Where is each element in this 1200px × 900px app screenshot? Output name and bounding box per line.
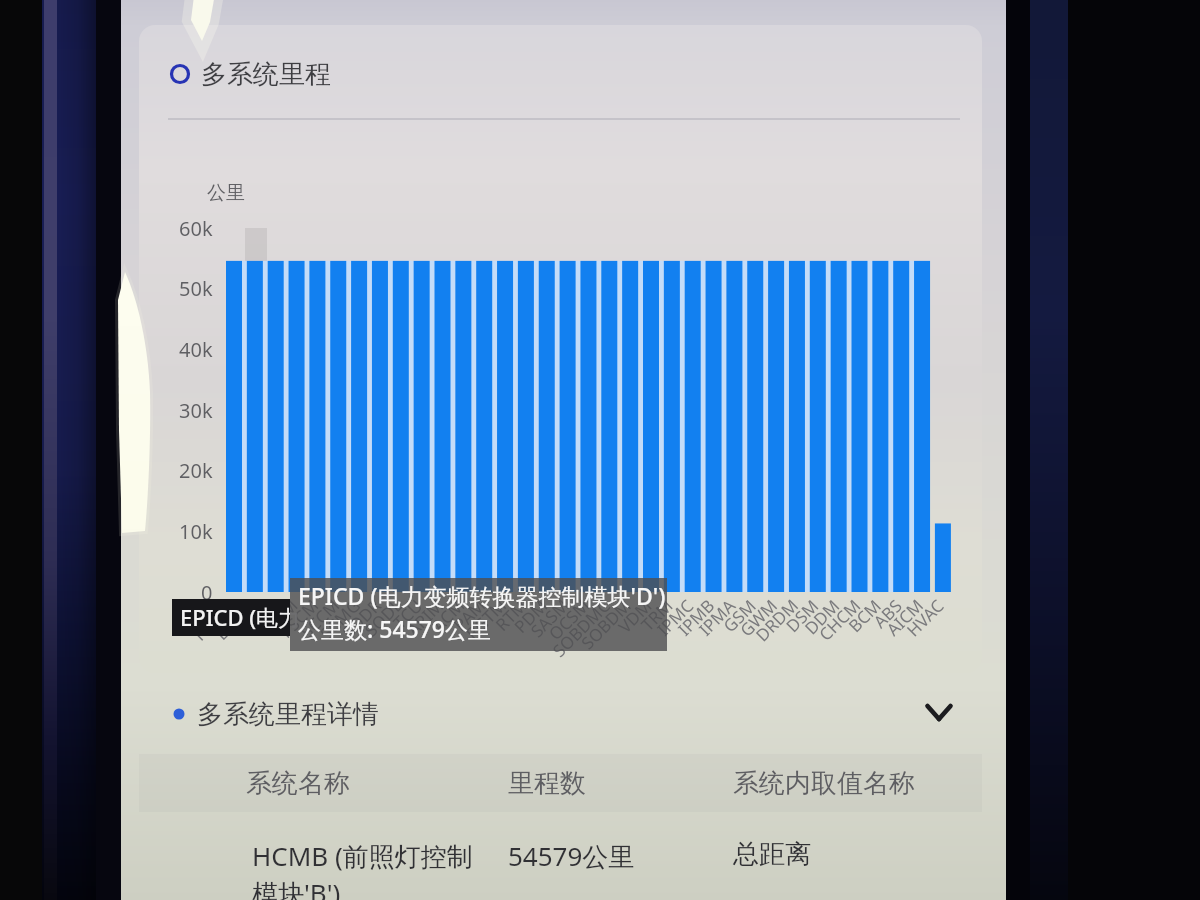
button[interactable]: 里程数: [491, 754, 716, 812]
button[interactable]: 多系统里程详情: [171, 692, 451, 736]
button[interactable]: Collapse details: [919, 692, 959, 732]
staticText: 里程数: [508, 767, 586, 800]
staticText: 54579公里: [508, 838, 635, 874]
button[interactable]: HCMB (前照灯控制模块'B'): [139, 826, 982, 900]
button[interactable]: 系统名称: [229, 754, 491, 812]
button[interactable]: 多系统里程: [167, 52, 487, 96]
staticText: 总距离: [733, 838, 811, 871]
staticText: 系统内取值名称: [733, 767, 915, 800]
button[interactable]: 系统内取值名称: [716, 754, 982, 812]
staticText: 系统名称: [246, 767, 350, 800]
staticText: 多系统里程: [201, 58, 331, 91]
staticText: 多系统里程详情: [197, 698, 379, 731]
staticText: HCMB (前照灯控制模块'B'): [252, 838, 484, 900]
